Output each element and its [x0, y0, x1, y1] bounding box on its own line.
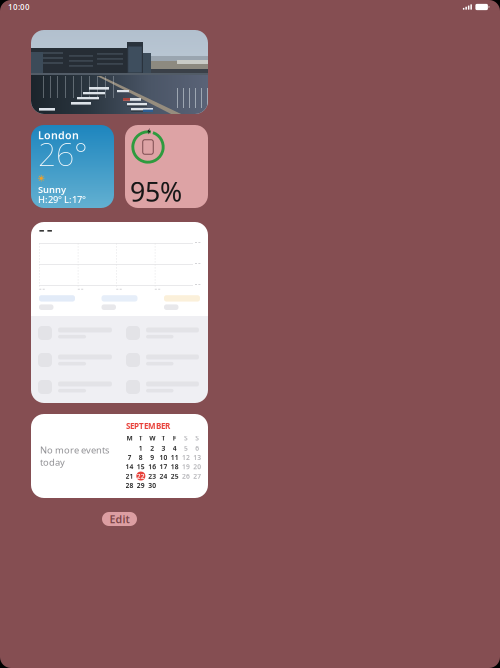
staticText: 4 [173, 444, 177, 453]
staticText: 22 [137, 472, 145, 480]
staticText: S [184, 434, 188, 442]
staticText: M [127, 434, 133, 442]
staticText: 26° [38, 132, 88, 175]
staticText: 2 [150, 444, 154, 453]
staticText: 10:00 [8, 2, 30, 12]
staticText: 14 [126, 462, 134, 471]
staticText: 95% [130, 174, 182, 209]
staticText: 30 [148, 481, 156, 490]
button[interactable]: – – [31, 222, 208, 403]
staticText: 11 [171, 453, 179, 462]
staticText: 29 [137, 481, 145, 490]
staticText: 3 [161, 444, 165, 453]
staticText: – – [39, 222, 52, 236]
staticText: F [173, 434, 177, 442]
staticText: No more events today [40, 444, 109, 468]
staticText: Sunny [38, 183, 66, 195]
staticText: 9 [150, 453, 154, 462]
staticText: 15 [137, 462, 145, 471]
staticText: W [149, 434, 155, 442]
staticText: 8 [139, 453, 143, 462]
button[interactable] [31, 30, 208, 114]
staticText: 18 [171, 462, 179, 471]
button[interactable]: Edit [102, 512, 137, 526]
staticText: T [139, 434, 143, 442]
staticText: 20 [193, 462, 201, 471]
staticText: S [195, 434, 199, 442]
button[interactable]: London [31, 125, 114, 208]
staticText: H:29° L:17° [38, 193, 86, 206]
staticText: London [38, 128, 79, 142]
button[interactable]: No more events today [31, 414, 208, 498]
staticText: 24 [159, 472, 167, 480]
staticText: 19 [182, 462, 190, 471]
staticText: 13 [193, 453, 201, 462]
staticText: 17 [159, 462, 167, 471]
staticText: 21 [126, 472, 134, 480]
button[interactable]: 95% [125, 125, 208, 208]
staticText: SEPTEMBER [126, 421, 170, 431]
staticText: T [161, 434, 165, 442]
staticText: 7 [128, 453, 132, 462]
staticText: 23 [148, 472, 156, 480]
staticText: 16 [148, 462, 156, 471]
staticText: 10 [159, 453, 167, 462]
staticText: 26 [182, 472, 190, 480]
staticText: 5 [184, 444, 188, 453]
staticText: 28 [126, 481, 134, 490]
staticText: Edit [109, 512, 129, 526]
staticText: 6 [195, 444, 199, 453]
staticText: 1 [139, 444, 143, 453]
staticText: 12 [182, 453, 190, 462]
staticText: 27 [193, 472, 201, 480]
staticText: 25 [171, 472, 179, 480]
